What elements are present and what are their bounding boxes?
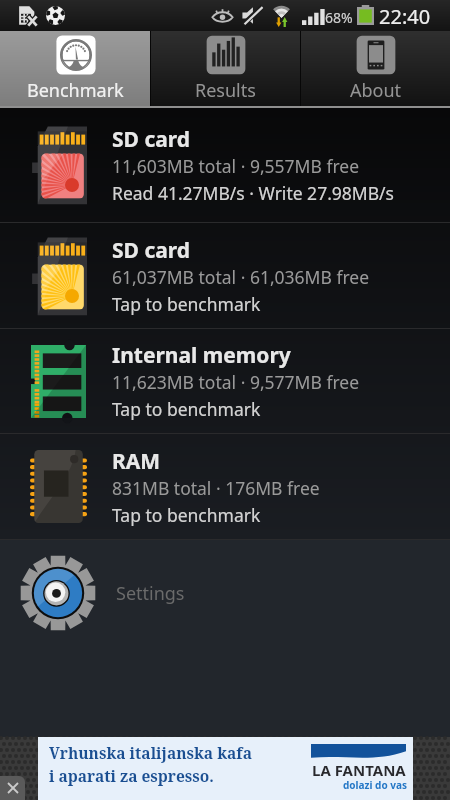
button[interactable]: RAM xyxy=(0,434,450,539)
staticText: About xyxy=(350,78,402,103)
button[interactable]: SD card xyxy=(0,223,450,328)
button[interactable]: About xyxy=(301,31,450,108)
button[interactable]: Benchmark xyxy=(0,31,150,108)
staticText: i aparati za espresso. xyxy=(49,765,214,786)
staticText: SD card xyxy=(112,125,191,154)
button[interactable]: Close ad xyxy=(0,776,25,800)
staticText: 11,603MB total · 9,557MB free xyxy=(112,154,360,178)
staticText: RAM xyxy=(112,447,161,476)
staticText: dolazi do vas xyxy=(343,778,407,792)
staticText: SD card xyxy=(112,236,191,265)
button[interactable]: Results xyxy=(151,31,300,108)
staticText: Results xyxy=(195,78,256,103)
staticText: Internal memory xyxy=(112,341,291,370)
staticText: Benchmark xyxy=(27,78,124,103)
button[interactable]: SD card xyxy=(0,108,450,222)
button[interactable]: Internal memory xyxy=(0,329,450,433)
staticText: Tap to benchmark xyxy=(112,503,261,527)
staticText: Settings xyxy=(116,581,185,606)
staticText: 11,623MB total · 9,577MB free xyxy=(112,370,360,394)
staticText: Read 41.27MB/s · Write 27.98MB/s xyxy=(112,181,394,205)
staticText: 61,037MB total · 61,036MB free xyxy=(112,265,370,289)
staticText: Vrhunska italijanska kafa xyxy=(49,742,252,763)
staticText: Tap to benchmark xyxy=(112,292,261,316)
staticText: LA FANTANA xyxy=(312,760,406,780)
staticText: 22:40 xyxy=(379,3,431,30)
staticText: 68% xyxy=(325,8,353,27)
staticText: Tap to benchmark xyxy=(112,397,261,421)
button[interactable]: Settings xyxy=(0,540,450,646)
staticText: 831MB total · 176MB free xyxy=(112,476,320,500)
button[interactable]: Vrhunska italijanska kafa xyxy=(38,737,413,800)
